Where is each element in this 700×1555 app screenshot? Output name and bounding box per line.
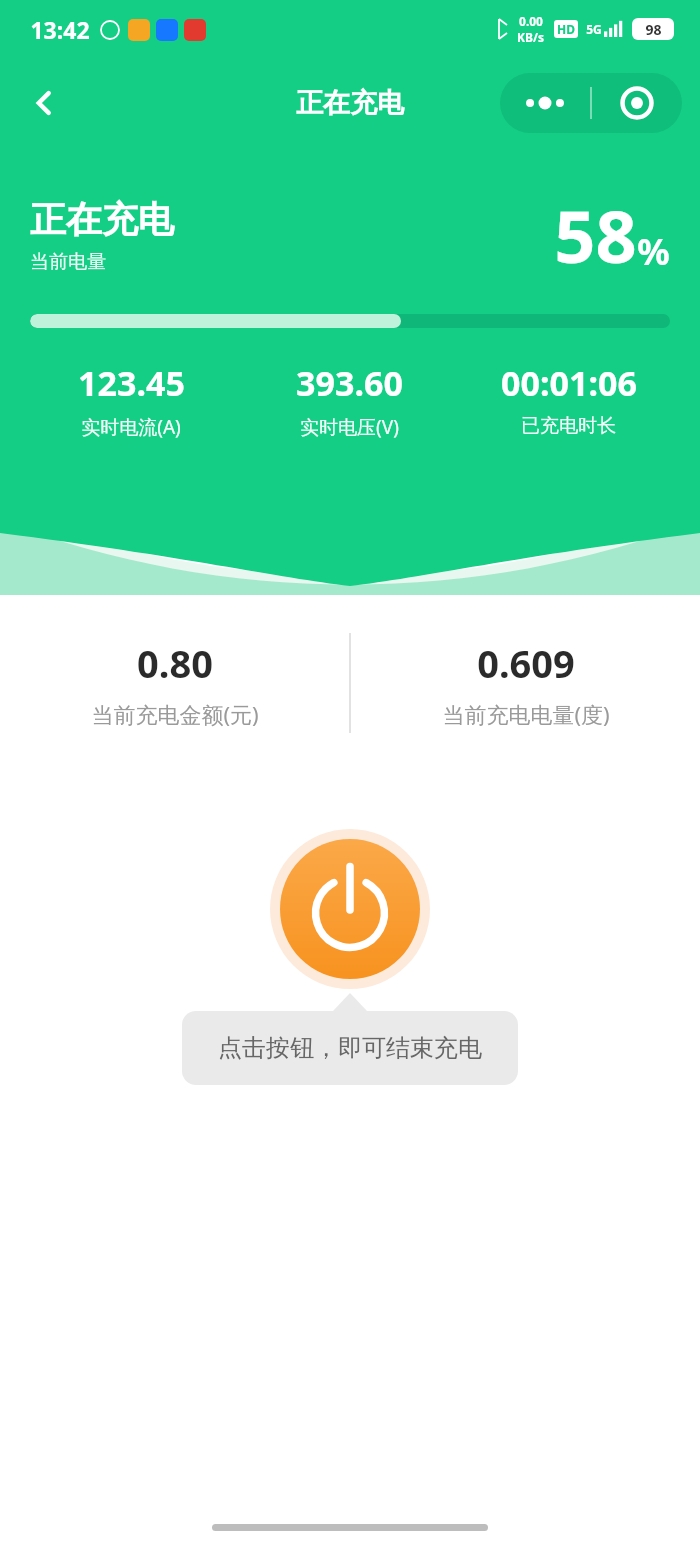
staticText: % <box>637 227 670 276</box>
staticText: 当前电量 <box>30 250 106 274</box>
staticText: 正在充电 <box>30 197 174 242</box>
button[interactable]: Stop charging <box>270 829 430 989</box>
staticText: 实时电压(V) <box>300 414 399 440</box>
button[interactable]: Back <box>16 75 72 131</box>
staticText: HD <box>557 21 575 37</box>
staticText: 393.60 <box>296 360 403 406</box>
staticText: 0.609 <box>477 637 575 689</box>
staticText: 当前充电金额(元) <box>91 699 259 729</box>
staticText: 13:42 <box>30 14 90 45</box>
staticText: 点击按钮，即可结束充电 <box>218 1033 482 1063</box>
button[interactable]: Target <box>592 73 682 133</box>
staticText: 当前充电电量(度) <box>442 699 610 729</box>
staticText: 0.00 <box>519 13 543 29</box>
staticText: 58 <box>554 186 637 284</box>
staticText: 已充电时长 <box>521 414 616 438</box>
button[interactable]: More options <box>500 73 590 133</box>
staticText: 00:01:06 <box>501 360 637 406</box>
staticText: 5G <box>586 21 602 37</box>
staticText: 正在充电 <box>296 86 404 120</box>
staticText: 98 <box>645 20 662 39</box>
staticText: 123.45 <box>78 360 185 406</box>
staticText: KB/s <box>517 29 544 45</box>
staticText: 0.80 <box>137 637 213 689</box>
staticText: 实时电流(A) <box>81 414 181 440</box>
